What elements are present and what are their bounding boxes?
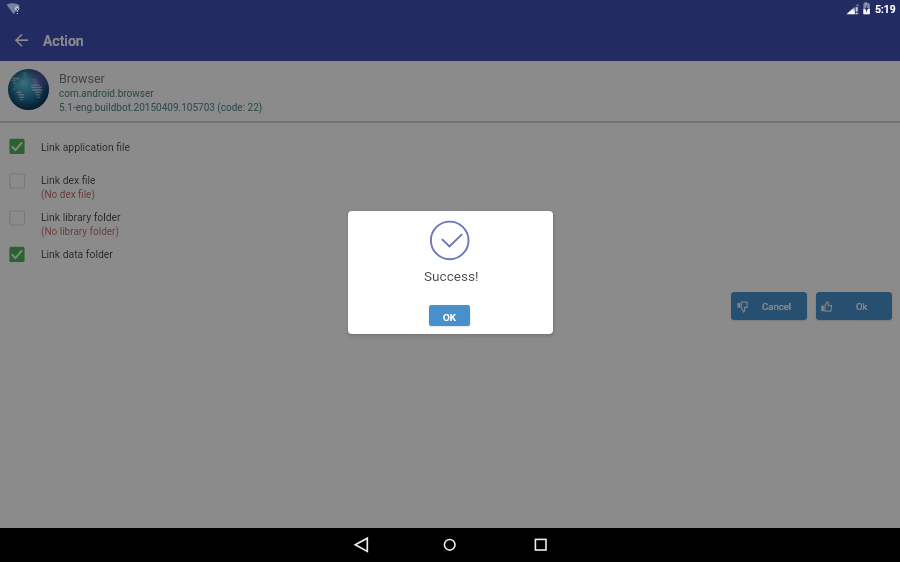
staticText: 5:19	[875, 3, 896, 15]
staticText: Link dex file	[41, 174, 96, 186]
staticText: OK	[443, 312, 456, 323]
button[interactable]: Link library folder	[0, 200, 900, 236]
staticText: 5.1-eng.buildbot.20150409.105703 (code: …	[59, 102, 263, 114]
staticText: (No dex file)	[41, 189, 95, 201]
button[interactable]: Cancel	[731, 292, 807, 320]
staticText: Cancel	[762, 301, 792, 312]
staticText: com.android.browser	[59, 88, 154, 100]
staticText: Link application file	[41, 141, 131, 153]
staticText: Link data folder	[41, 248, 113, 260]
button[interactable]: OK	[429, 305, 470, 326]
staticText: Ok	[856, 301, 868, 312]
staticText: Action	[43, 33, 84, 49]
button[interactable]: Ok	[816, 292, 892, 320]
button[interactable]: Home	[426, 528, 474, 562]
button[interactable]: Link application file	[0, 124, 900, 161]
staticText: (No library folder)	[41, 226, 119, 238]
button[interactable]: Back	[337, 528, 385, 562]
button[interactable]: Recent apps	[517, 528, 565, 562]
button[interactable]: Back	[6, 24, 38, 56]
button[interactable]: Link data folder	[0, 236, 900, 272]
staticText: Success!	[424, 268, 479, 284]
staticText: Link library folder	[41, 211, 121, 223]
staticText: Browser	[59, 71, 105, 86]
button[interactable]: Link dex file	[0, 161, 900, 200]
